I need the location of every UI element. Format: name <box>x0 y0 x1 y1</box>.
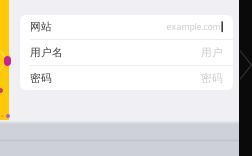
staticText: 密码 <box>201 72 223 85</box>
staticText: example.com <box>166 21 220 32</box>
staticText: 密码 <box>30 72 52 85</box>
button[interactable]: 用户名 <box>20 40 233 65</box>
staticText: 用户名 <box>30 46 63 59</box>
button[interactable]: 密码 <box>20 66 233 91</box>
staticText: 网站 <box>30 20 52 33</box>
button[interactable]: 网站 <box>20 14 233 39</box>
staticText: 用户 <box>201 46 223 59</box>
